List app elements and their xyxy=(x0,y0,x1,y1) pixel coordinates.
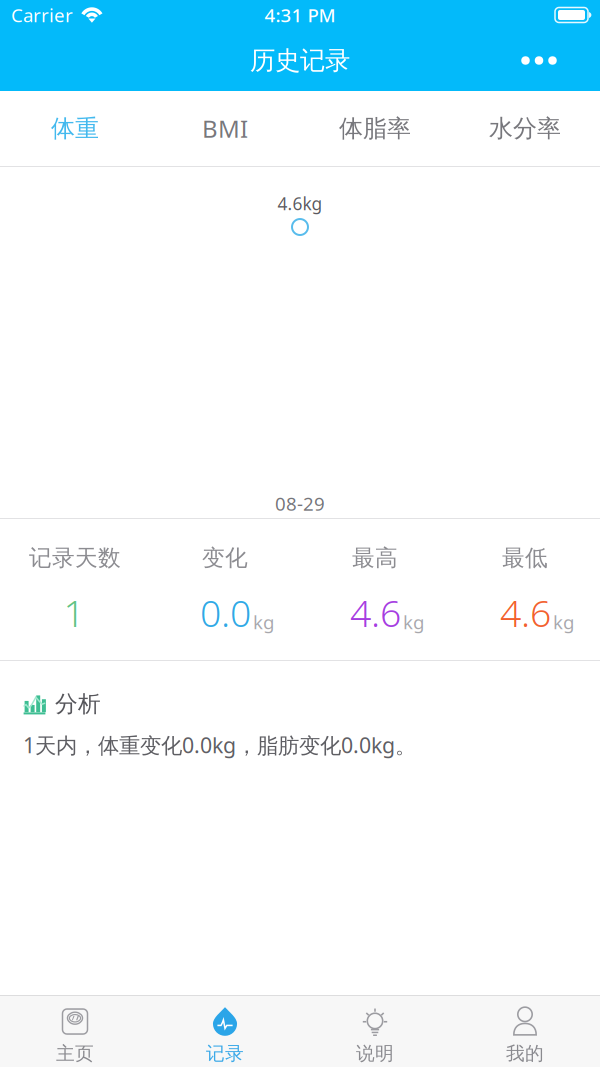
staticText: 体重 xyxy=(51,114,99,143)
staticText: kg xyxy=(553,610,574,634)
staticText: 最高 xyxy=(352,544,398,572)
staticText: 主页 xyxy=(56,1042,94,1065)
staticText: 分析 xyxy=(55,690,101,718)
staticText: kg xyxy=(253,610,274,634)
staticText: 4.6kg xyxy=(277,192,322,215)
button[interactable]: 体脂率 xyxy=(300,91,450,166)
staticText: 0.0 xyxy=(200,588,251,637)
staticText: 说明 xyxy=(356,1042,394,1065)
staticText: 4.6 xyxy=(350,588,401,637)
staticText: kg xyxy=(403,610,424,634)
staticText: 1 xyxy=(63,588,84,637)
button[interactable]: 体重 xyxy=(0,91,150,166)
staticText: 1天内，体重变化0.0kg，脂肪变化0.0kg。 xyxy=(23,731,416,759)
staticText: 体脂率 xyxy=(339,114,411,143)
button[interactable]: 说明 xyxy=(300,995,450,1067)
staticText: 水分率 xyxy=(489,114,561,143)
staticText: 4:31 PM xyxy=(264,3,335,27)
button[interactable]: 水分率 xyxy=(450,91,600,166)
staticText: BMI xyxy=(202,113,248,144)
staticText: Carrier xyxy=(11,3,73,27)
staticText: 我的 xyxy=(506,1042,544,1065)
button[interactable]: BMI xyxy=(150,91,300,166)
staticText: 4.6 xyxy=(500,588,551,637)
staticText: 历史记录 xyxy=(250,45,350,76)
staticText: 最低 xyxy=(502,544,548,572)
button[interactable]: More options xyxy=(478,30,600,91)
staticText: 记录天数 xyxy=(29,544,121,572)
staticText: 变化 xyxy=(202,544,248,572)
button[interactable]: 主页 xyxy=(0,995,150,1067)
button[interactable]: 记录 xyxy=(150,995,300,1067)
button[interactable]: 我的 xyxy=(450,995,600,1067)
staticText: 08-29 xyxy=(275,491,325,516)
staticText: 记录 xyxy=(206,1042,244,1065)
